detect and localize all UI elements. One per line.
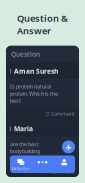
staticText: Ask Question xyxy=(12,167,30,170)
button[interactable]: Comment xyxy=(6,108,79,120)
button[interactable]: Profile xyxy=(53,158,75,170)
staticText: are the best bodybuilding supplements xyxy=(10,141,42,162)
staticText: Question & Answer xyxy=(17,12,68,37)
staticText: Is protein natural protein. Which is the… xyxy=(10,83,58,104)
staticText: Aman Suresh xyxy=(14,67,58,75)
staticText: Question xyxy=(11,50,40,59)
staticText: Comment xyxy=(51,168,75,175)
button[interactable]: Ask Question xyxy=(10,158,32,170)
button[interactable]: Comment xyxy=(6,165,79,177)
staticText: Comment xyxy=(51,110,75,117)
button[interactable]: Is protein natural protein. Which is the… xyxy=(6,80,79,107)
button[interactable]: are the best bodybuilding supplements xyxy=(6,138,79,165)
button[interactable]: Aman Suresh xyxy=(6,63,79,79)
staticText: + xyxy=(65,140,71,154)
button[interactable]: Ask a question xyxy=(62,140,75,154)
button[interactable]: Answers xyxy=(32,158,53,170)
staticText: Maria xyxy=(14,124,33,133)
button[interactable]: Maria xyxy=(6,120,79,137)
